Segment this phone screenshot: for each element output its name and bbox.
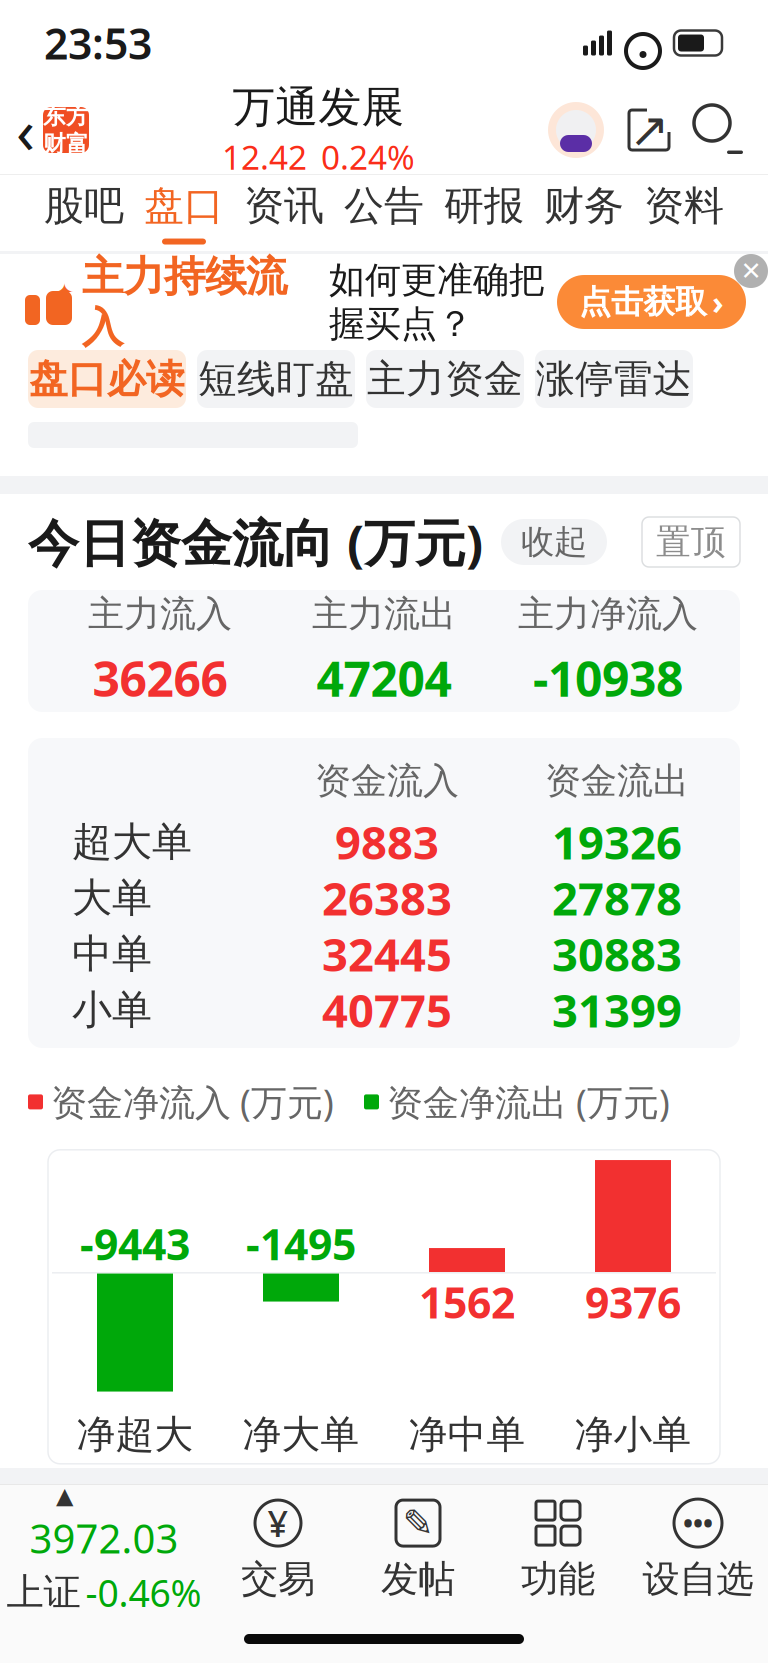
staticText: 主力流入 [88,592,232,636]
staticText: 发帖 [381,1556,455,1602]
button[interactable]: Share [624,105,674,155]
button[interactable]: 资料 [634,175,734,251]
staticText: 19326 [552,812,682,872]
staticText: 36266 [92,646,227,710]
staticText: 大单 [72,873,152,922]
staticText: 交易 [241,1556,315,1602]
staticText: 盘口 [144,181,224,230]
staticText: -9443 [80,1215,190,1272]
staticText: 30883 [552,924,682,984]
staticText: 中单 [72,929,152,978]
staticText: 万通发展 [232,81,404,134]
staticText: 资讯 [244,181,324,230]
button[interactable]: 公告 [334,175,434,251]
staticText: 9883 [335,812,439,872]
button[interactable]: 盘口必读 [28,350,186,408]
staticText: 研报 [444,181,524,230]
staticText: ¥ [267,1499,288,1547]
staticText: 资金净流入 (万元) [51,1078,334,1126]
staticText: 公告 [344,181,424,230]
staticText: ✦ [55,279,74,305]
staticText: 主力净流入 [518,592,698,636]
staticText: 26383 [322,868,452,928]
staticText: 点击获取 [579,282,707,322]
staticText: 今日资金流向 (万元) [28,508,483,576]
staticText: 盘口必读 [29,355,185,403]
staticText: 资料 [644,181,724,230]
staticText: 上证 [6,1569,80,1615]
staticText: 净小单 [574,1411,691,1458]
staticText: 资金流出 [545,759,689,803]
staticText: ↗ [629,103,669,157]
staticText: 短线盯盘 [198,355,354,403]
staticText: › [712,281,724,323]
staticText: ✕ [740,257,761,285]
button[interactable]: 涨停雷达 [535,350,693,408]
staticText: 主力持续流入 [82,251,287,353]
staticText: 23:53 [44,15,152,71]
staticText: 设自选 [642,1556,753,1602]
button[interactable]: 主力资金 [366,350,524,408]
button[interactable]: 盘口 [134,175,234,251]
staticText: -1495 [246,1215,356,1272]
staticText: 主力流出 [312,592,456,636]
button[interactable]: ••• [628,1490,768,1610]
button[interactable]: 功能 [488,1490,628,1610]
button[interactable]: 短线盯盘 [197,350,355,408]
staticText: 47204 [316,646,451,710]
staticText: 股吧 [44,181,124,230]
button[interactable]: AI assistant [548,102,604,158]
staticText: ▲ [56,1483,73,1508]
staticText: 如何更准确把握买点？ [329,258,545,346]
staticText: 财务 [544,181,624,230]
button[interactable]: Close [734,254,768,288]
button[interactable]: ✎ [348,1490,488,1610]
staticText: 资金净流出 (万元) [387,1078,670,1126]
staticText: 资金流入 [315,759,459,803]
staticText: 0.24% [321,135,415,179]
button[interactable]: 股吧 [34,175,134,251]
staticText: 财富 [43,130,89,158]
staticText: ••• [683,1505,713,1541]
staticText: 东方 [43,102,89,130]
button[interactable]: 点击获取 [557,275,746,329]
staticText: 收起 [521,521,587,562]
button[interactable]: 财务 [534,175,634,251]
staticText: 32445 [322,924,452,984]
staticText: 涨停雷达 [536,355,692,403]
staticText: 40775 [322,980,452,1040]
button[interactable]: ¥ [208,1490,348,1610]
staticText: 3972.03 [29,1511,178,1565]
staticText: ‹ [16,89,35,171]
staticText: 小单 [72,985,152,1034]
button[interactable]: ▲ [0,1490,208,1610]
staticText: 27878 [552,868,682,928]
button[interactable]: 资讯 [234,175,334,251]
button[interactable]: Search [694,105,744,155]
button[interactable]: 收起 [501,519,607,565]
staticText: 超大单 [72,817,192,866]
staticText: 9376 [585,1274,681,1330]
staticText: 1562 [419,1274,515,1330]
staticText: 31399 [552,980,682,1040]
button[interactable]: Back [0,86,89,174]
staticText: 功能 [521,1556,595,1602]
staticText: 12.42 [222,135,307,179]
staticText: ✎ [402,1502,433,1544]
staticText: -0.46% [85,1568,201,1617]
button[interactable]: 研报 [434,175,534,251]
staticText: 主力资金 [367,355,523,403]
staticText: 置顶 [656,521,726,563]
staticText: 净超大 [76,1411,193,1458]
button[interactable]: 置顶 [642,517,740,567]
staticText: 净中单 [408,1411,525,1458]
staticText: 净大单 [242,1411,359,1458]
staticText: -10938 [533,646,683,710]
